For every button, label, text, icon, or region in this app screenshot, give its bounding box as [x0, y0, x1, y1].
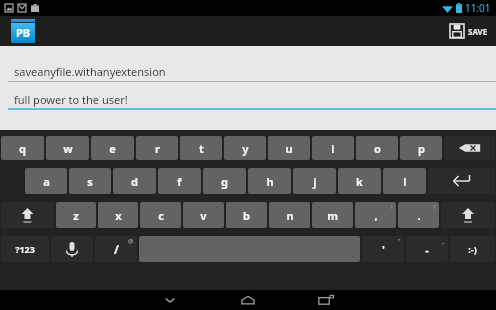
staticText: ?	[433, 203, 436, 211]
staticText: r	[155, 141, 160, 156]
staticText: @	[128, 237, 134, 245]
button[interactable]: r	[136, 136, 178, 160]
button[interactable]: x	[98, 202, 138, 228]
staticText: v	[200, 208, 207, 223]
staticText: SAVE	[468, 26, 488, 37]
staticText: ?123	[15, 243, 35, 255]
button[interactable]: c	[140, 202, 181, 228]
staticText: "	[398, 237, 401, 245]
staticText: n	[286, 208, 294, 223]
button[interactable]: full power to the user!	[0, 88, 496, 110]
button[interactable]: Shift	[441, 202, 495, 228]
button[interactable]: q	[1, 136, 44, 160]
button[interactable]: Voice input	[51, 236, 93, 262]
staticText: saveanyfile.withanyextension	[14, 64, 166, 79]
staticText: a	[43, 174, 50, 189]
staticText: m	[327, 208, 338, 223]
button[interactable]: n	[269, 202, 310, 228]
staticText: w	[63, 141, 73, 156]
button[interactable]: -	[406, 236, 448, 262]
staticText: :-)	[468, 243, 477, 255]
button[interactable]: SAVE	[442, 16, 496, 46]
button[interactable]: m	[312, 202, 353, 228]
staticText: p	[418, 141, 425, 156]
staticText: _	[442, 237, 445, 245]
button[interactable]: d	[113, 168, 156, 194]
button[interactable]: i	[312, 136, 354, 160]
button[interactable]: w	[46, 136, 89, 160]
button[interactable]: z	[56, 202, 96, 228]
staticText: PB	[16, 25, 31, 40]
button[interactable]: h	[248, 168, 291, 194]
staticText: t	[199, 141, 204, 156]
button[interactable]: .	[398, 202, 439, 228]
button[interactable]: a	[25, 168, 67, 194]
staticText: '	[382, 242, 385, 257]
button[interactable]: ,	[355, 202, 396, 228]
staticText: o	[374, 141, 381, 156]
button[interactable]: v	[183, 202, 224, 228]
button[interactable]: u	[268, 136, 310, 160]
button[interactable]: o	[356, 136, 398, 160]
button[interactable]: :-)	[450, 236, 495, 262]
staticText: !	[391, 203, 393, 211]
staticText: b	[243, 208, 250, 223]
button[interactable]: t	[180, 136, 222, 160]
staticText: 11:01	[465, 1, 491, 15]
button[interactable]: Recent apps	[296, 290, 356, 310]
staticText: y	[242, 141, 249, 156]
staticText: /	[114, 241, 119, 257]
staticText: s	[87, 174, 93, 189]
button[interactable]: saveanyfile.withanyextension	[0, 60, 496, 82]
staticText: g	[221, 174, 228, 189]
staticText: j	[313, 174, 317, 189]
button[interactable]: Home	[218, 290, 278, 310]
button[interactable]: y	[224, 136, 266, 160]
staticText: e	[109, 141, 116, 156]
button[interactable]: '	[362, 236, 404, 262]
staticText: c	[158, 208, 164, 223]
staticText: i	[331, 141, 335, 156]
staticText: q	[19, 141, 26, 156]
button[interactable]: b	[226, 202, 267, 228]
button[interactable]: Shift	[1, 202, 54, 228]
staticText: k	[356, 174, 363, 189]
button[interactable]: p	[400, 136, 442, 160]
staticText: d	[131, 174, 138, 189]
staticText: z	[73, 208, 79, 223]
staticText: x	[115, 208, 122, 223]
staticText: .	[417, 208, 421, 223]
button[interactable]: s	[69, 168, 111, 194]
button[interactable]: ?123	[1, 236, 49, 262]
button[interactable]: Hide keyboard	[140, 290, 200, 310]
staticText: l	[403, 174, 407, 189]
button[interactable]: g	[203, 168, 246, 194]
staticText: -	[425, 242, 429, 257]
staticText: h	[266, 174, 274, 189]
button[interactable]: /	[95, 236, 137, 262]
button[interactable]: App icon	[11, 19, 35, 43]
button[interactable]: j	[293, 168, 336, 194]
staticText: ,	[374, 208, 378, 223]
button[interactable]: f	[158, 168, 201, 194]
button[interactable]: k	[338, 168, 381, 194]
button[interactable]: l	[383, 168, 426, 194]
button[interactable]: e	[91, 136, 134, 160]
button[interactable]: Backspace	[444, 136, 495, 160]
staticText: full power to the user!	[14, 92, 128, 107]
button[interactable]: Enter	[428, 168, 495, 194]
staticText: u	[285, 141, 293, 156]
staticText: f	[177, 174, 182, 189]
